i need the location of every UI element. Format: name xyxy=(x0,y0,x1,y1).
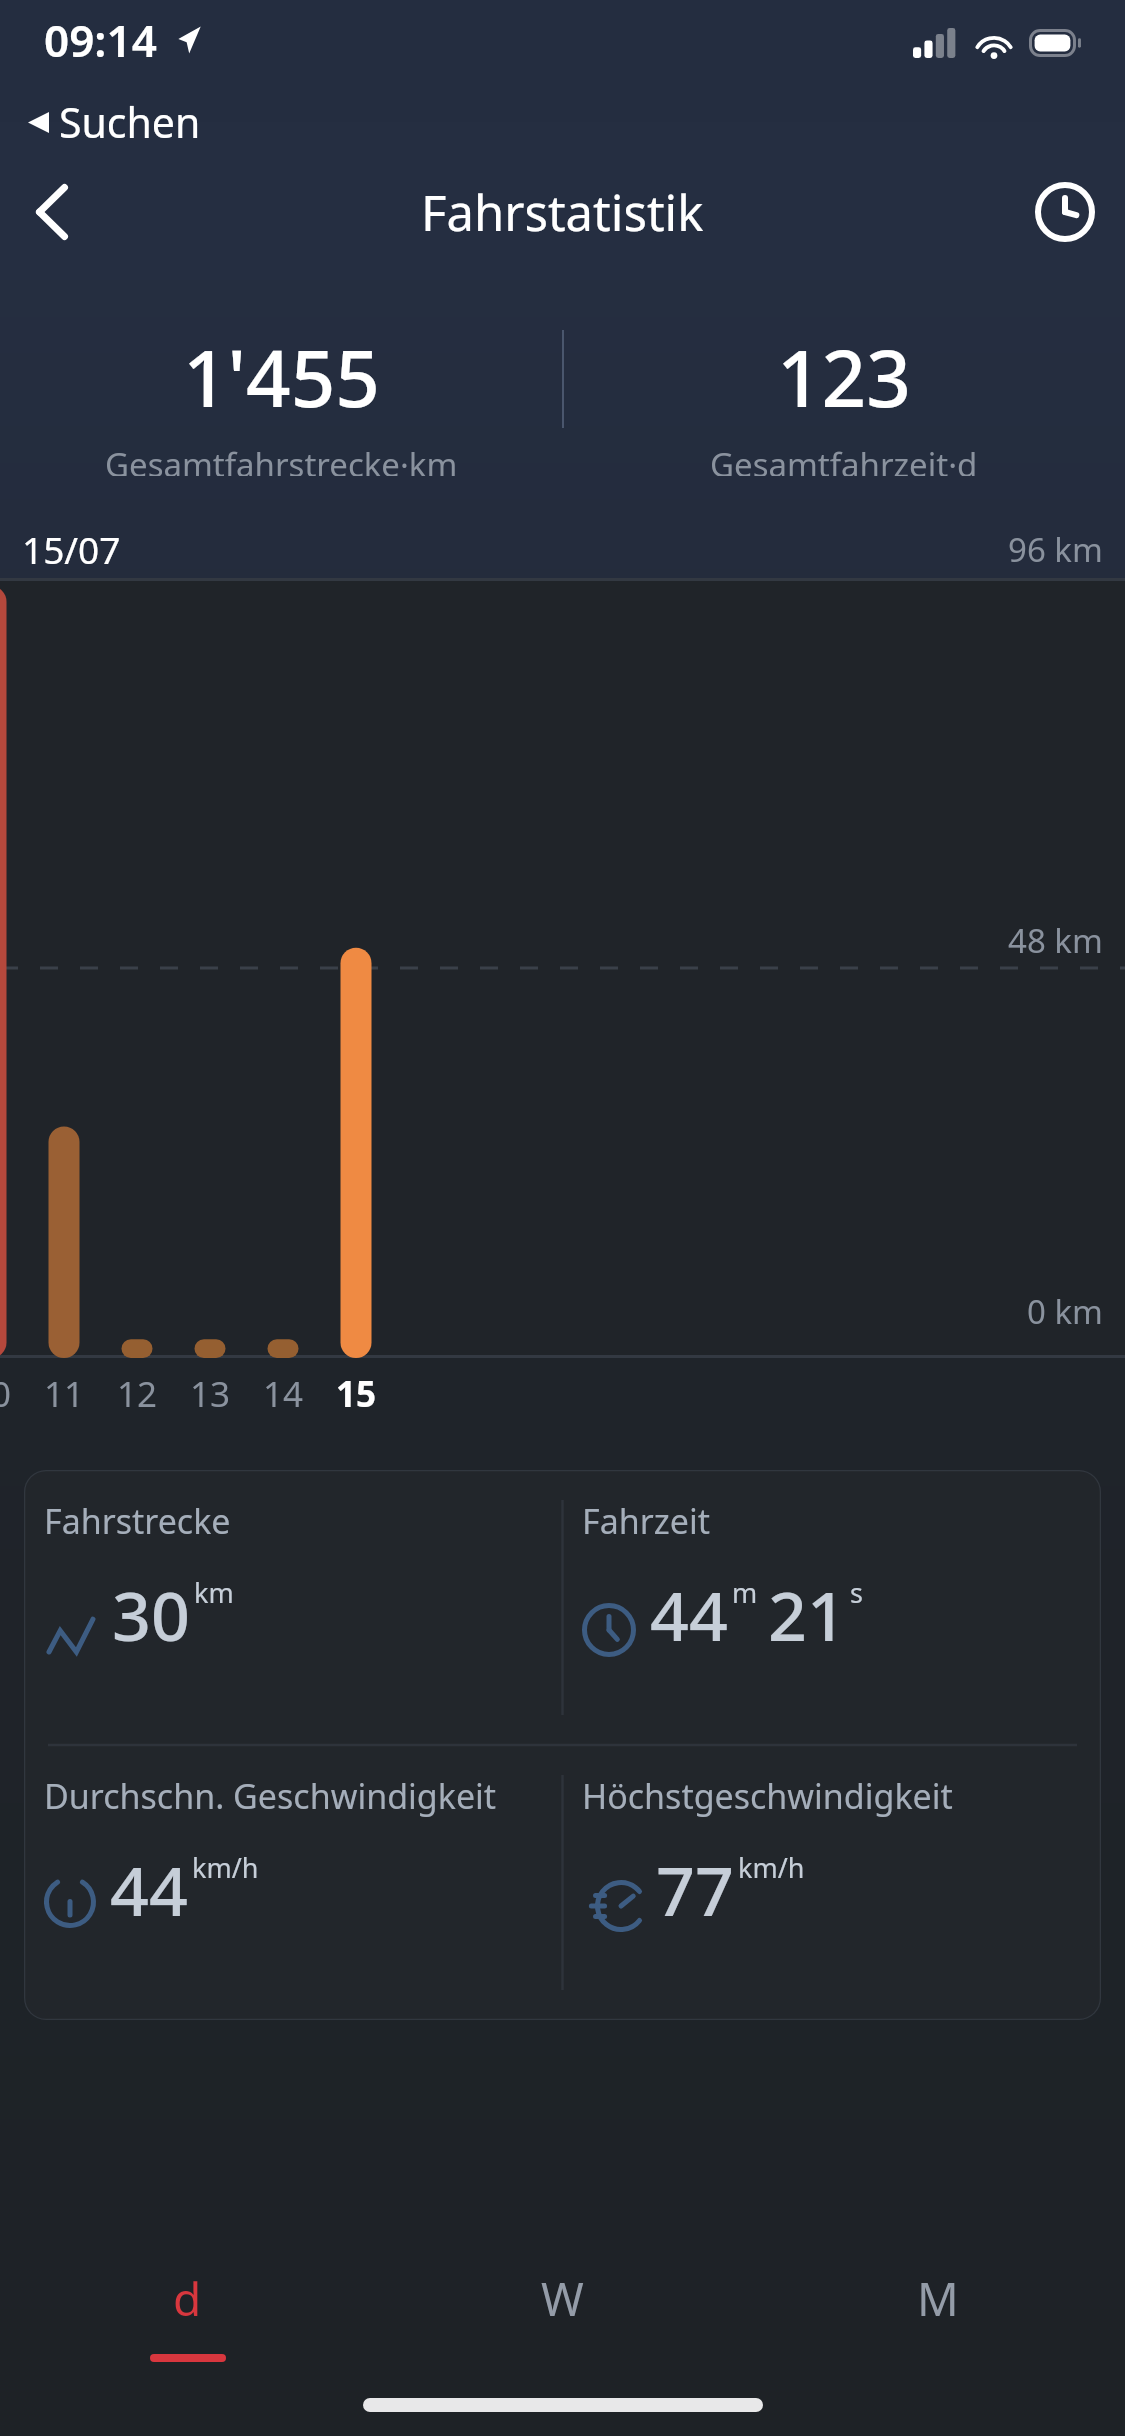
staticText: s xyxy=(850,1574,863,1611)
staticText: W xyxy=(541,2267,584,2330)
staticText: Höchstgeschwindigkeit xyxy=(582,1773,953,1819)
button[interactable]: Fahrzeit xyxy=(562,1470,1101,1745)
button[interactable]: Zurück xyxy=(10,170,94,254)
staticText: 30 xyxy=(112,1568,190,1661)
staticText: 10 xyxy=(0,1370,31,1418)
staticText: 77 xyxy=(656,1843,734,1936)
button[interactable]: Suchen xyxy=(22,88,207,156)
staticText: 96 km xyxy=(1008,527,1103,572)
button[interactable]: d xyxy=(0,2259,375,2370)
staticText: 21 xyxy=(768,1568,846,1661)
staticText: 48 km xyxy=(1008,918,1103,963)
staticText: Fahrstatistik xyxy=(421,179,704,246)
staticText: 0 km xyxy=(1027,1289,1103,1334)
staticText: M xyxy=(917,2267,959,2330)
staticText: 15/07 xyxy=(22,524,121,574)
button[interactable]: Durchschn. Geschwindigkeit xyxy=(24,1745,562,2020)
staticText: Gesamtfahrstrecke·km xyxy=(105,442,458,476)
staticText: 123 xyxy=(777,324,911,430)
button[interactable]: W xyxy=(375,2259,750,2370)
staticText: m xyxy=(732,1574,758,1611)
button[interactable]: Höchstgeschwindigkeit xyxy=(562,1745,1101,2020)
staticText: d xyxy=(173,2267,202,2330)
staticText: 11 xyxy=(24,1370,104,1418)
staticText: Durchschn. Geschwindigkeit xyxy=(44,1773,497,1819)
staticText: Fahrzeit xyxy=(582,1498,710,1544)
staticText: km/h xyxy=(192,1849,259,1886)
staticText: Fahrstrecke xyxy=(44,1498,231,1544)
staticText: 1'455 xyxy=(183,324,380,430)
button[interactable]: M xyxy=(750,2259,1125,2370)
staticText: 13 xyxy=(170,1370,250,1418)
staticText: Suchen xyxy=(59,94,201,150)
staticText: 15 xyxy=(316,1370,396,1418)
staticText: 14 xyxy=(243,1370,323,1418)
staticText: km xyxy=(194,1574,234,1611)
button[interactable]: Verlauf xyxy=(1023,170,1107,254)
staticText: 12 xyxy=(97,1370,177,1418)
staticText: 09:14 xyxy=(44,10,157,70)
staticText: 44 xyxy=(110,1843,188,1936)
staticText: 44 xyxy=(650,1568,728,1661)
staticText: km/h xyxy=(738,1849,805,1886)
staticText: Gesamtfahrzeit·d xyxy=(710,442,978,476)
button[interactable]: Fahrstrecke xyxy=(24,1470,562,1745)
